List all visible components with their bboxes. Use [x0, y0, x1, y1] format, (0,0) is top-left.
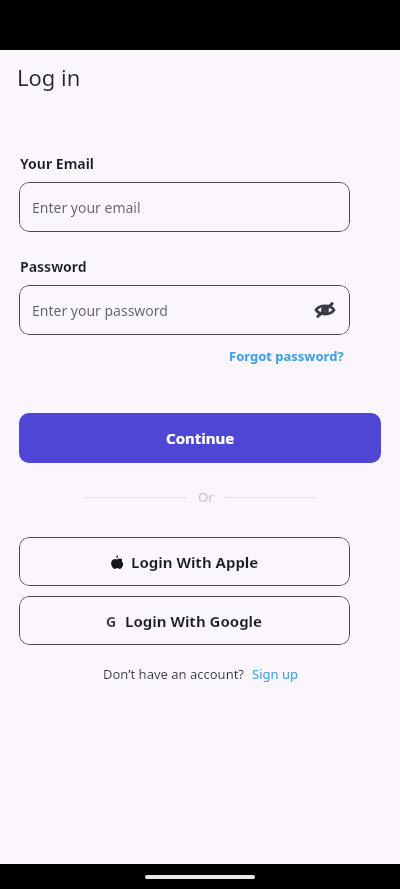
button[interactable]: Sign up [252, 665, 298, 683]
button[interactable]: Enter your email [19, 182, 350, 232]
staticText: Sign up [252, 665, 298, 683]
button[interactable]: Enter your password [19, 285, 350, 335]
staticText: Don’t have an account? [103, 665, 244, 683]
button[interactable]: Continue [19, 413, 381, 463]
staticText: Enter your email [32, 198, 141, 217]
staticText: Login With Apple [131, 552, 259, 572]
staticText: Enter your password [32, 301, 168, 320]
staticText: Your Email [20, 154, 95, 173]
button[interactable]: G [19, 596, 350, 645]
staticText: Login With Google [125, 611, 263, 631]
staticText: G [106, 612, 117, 631]
button[interactable]: Forgot password? [229, 347, 344, 365]
staticText: Continue [166, 428, 235, 448]
staticText: Forgot password? [229, 347, 344, 365]
staticText: Log in [17, 62, 81, 92]
staticText: Or [198, 488, 214, 506]
button[interactable]: Show password [309, 294, 341, 326]
staticText: Password [20, 257, 87, 276]
button[interactable]: Login With Apple [19, 537, 350, 586]
